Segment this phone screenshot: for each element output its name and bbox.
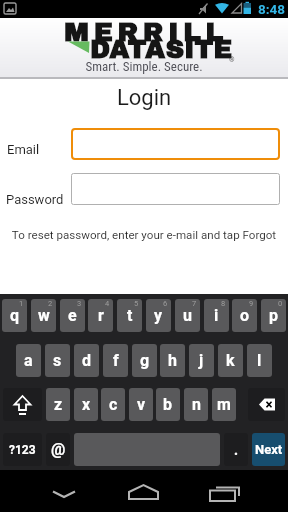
button[interactable]: w [31, 299, 56, 332]
staticText: Login [0, 85, 288, 111]
staticText: Smart. Simple. Secure. [0, 59, 288, 74]
button[interactable]: i [204, 299, 229, 332]
staticText: 7 [192, 299, 197, 308]
staticText: DATASITE [90, 35, 233, 63]
staticText: g [140, 351, 150, 370]
staticText: To reset password, enter your e-mail and… [0, 228, 288, 242]
staticText: s [53, 351, 62, 370]
staticText: k [226, 351, 235, 370]
button[interactable]: x [74, 388, 98, 421]
staticText: f [113, 351, 119, 370]
button[interactable]: a [16, 344, 41, 377]
staticText: . [234, 442, 239, 458]
staticText: MERRILL [64, 18, 228, 47]
button[interactable]: b [156, 388, 180, 421]
button[interactable]: m [212, 388, 236, 421]
staticText: ® [229, 56, 235, 64]
staticText: 1 [19, 299, 24, 308]
staticText: o [240, 306, 250, 325]
staticText: b [163, 395, 173, 414]
button[interactable] [71, 173, 280, 205]
button[interactable] [71, 128, 280, 160]
button[interactable]: p [261, 299, 286, 332]
staticText: Next [255, 442, 283, 457]
staticText: d [82, 351, 92, 370]
staticText: a [24, 351, 33, 370]
button[interactable] [45, 478, 83, 506]
staticText: ?123 [9, 443, 36, 457]
button[interactable]: v [129, 388, 153, 421]
staticText: h [168, 351, 177, 370]
button[interactable] [3, 388, 42, 421]
button[interactable]: . [224, 433, 248, 466]
button[interactable]: h [160, 344, 185, 377]
staticText: @ [51, 440, 66, 459]
staticText: t [127, 306, 133, 325]
staticText: v [137, 395, 146, 414]
staticText: 9 [249, 299, 254, 308]
staticText: m [217, 395, 231, 414]
button[interactable]: f [103, 344, 128, 377]
staticText: 8 [221, 299, 226, 308]
button[interactable] [205, 478, 243, 506]
button[interactable] [125, 478, 163, 506]
button[interactable]: Next [252, 433, 285, 466]
button[interactable]: n [184, 388, 208, 421]
button[interactable]: j [189, 344, 214, 377]
staticText: 5 [134, 299, 139, 308]
staticText: z [54, 395, 63, 414]
button[interactable]: d [74, 344, 99, 377]
staticText: 8:48 [258, 1, 286, 17]
button[interactable]: ?123 [3, 433, 42, 466]
staticText: l [257, 351, 262, 370]
staticText: c [109, 395, 118, 414]
staticText: u [183, 306, 192, 325]
staticText: q [10, 306, 20, 325]
staticText: 2 [48, 299, 53, 308]
staticText: j [199, 351, 204, 370]
button[interactable]: z [46, 388, 70, 421]
staticText: 6 [163, 299, 168, 308]
button[interactable]: q [2, 299, 27, 332]
button[interactable]: o [232, 299, 257, 332]
button[interactable]: k [218, 344, 243, 377]
staticText: 0 [278, 299, 283, 308]
button[interactable]: l [247, 344, 272, 377]
button[interactable]: c [101, 388, 125, 421]
button[interactable]: u [175, 299, 200, 332]
staticText: x [82, 395, 91, 414]
button[interactable]: g [132, 344, 157, 377]
button[interactable]: y [146, 299, 171, 332]
staticText: Password [6, 192, 64, 207]
staticText: 4 [105, 299, 110, 308]
staticText: n [192, 395, 201, 414]
button[interactable]: r [88, 299, 113, 332]
staticText: w [38, 306, 50, 325]
staticText: r [98, 306, 104, 325]
staticText: y [154, 306, 163, 325]
staticText: Email [7, 142, 40, 157]
staticText: e [68, 306, 77, 325]
button[interactable]: @ [46, 433, 70, 466]
button[interactable]: e [60, 299, 85, 332]
staticText: p [269, 306, 279, 325]
button[interactable]: t [117, 299, 142, 332]
button[interactable]: s [45, 344, 70, 377]
staticText: i [214, 306, 219, 325]
staticText: 3 [77, 299, 82, 308]
button[interactable] [248, 388, 285, 421]
